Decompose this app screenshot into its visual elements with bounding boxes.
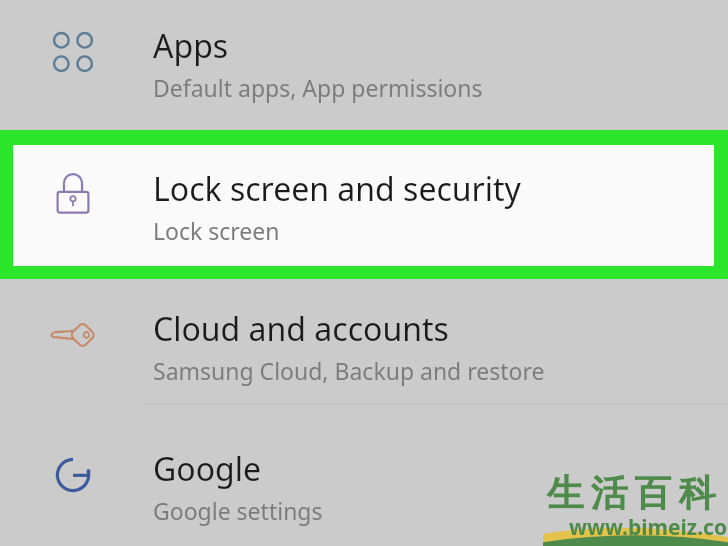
staticText: Samsung Cloud, Backup and restore (153, 355, 545, 386)
staticText: Default apps, App permissions (153, 72, 483, 103)
staticText: Apps (153, 24, 229, 68)
staticText: Lock screen and security (153, 167, 521, 211)
other: Apps (51, 30, 95, 74)
button[interactable]: Lock screen and security (0, 130, 728, 279)
staticText: Lock screen (153, 215, 280, 246)
other: Lock screen and security (51, 173, 95, 217)
other: Cloud and accounts (51, 313, 95, 357)
staticText: 生活百科 (543, 470, 719, 517)
staticText: Google settings (153, 495, 323, 526)
other: Google (51, 453, 95, 497)
staticText: Google (153, 447, 262, 491)
staticText: www.bimeiz.com (569, 513, 728, 542)
staticText: Cloud and accounts (153, 307, 449, 351)
button[interactable]: Apps (0, 0, 728, 130)
button[interactable]: Cloud and accounts (0, 279, 728, 405)
button[interactable]: Google (0, 405, 728, 546)
